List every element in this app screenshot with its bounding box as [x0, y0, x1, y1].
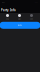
- staticText: 9:41: [2, 2, 5, 3]
- button[interactable]: Max: [17, 14, 21, 20]
- staticText: Party Info: [1, 8, 16, 12]
- staticText: Ava: [6, 18, 9, 20]
- button[interactable]: Ava: [5, 14, 9, 20]
- staticText: Invite: [18, 24, 22, 26]
- button[interactable]: Add: [29, 14, 33, 20]
- button[interactable]: Invite: [0, 22, 40, 29]
- staticText: Max: [18, 18, 21, 20]
